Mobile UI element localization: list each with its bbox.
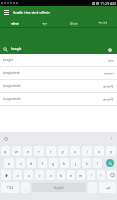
staticText: অভিধান — [11, 22, 19, 25]
button[interactable]: j — [71, 158, 80, 168]
button[interactable]: k — [82, 158, 91, 168]
button[interactable]: bangla — [0, 54, 117, 67]
staticText: bangladesh — [3, 71, 21, 75]
button[interactable]: o — [94, 146, 104, 156]
staticText: b — [60, 173, 63, 177]
button[interactable]: g — [49, 158, 58, 168]
button[interactable]: Keyboard settings — [1, 134, 10, 143]
staticText: o — [98, 149, 100, 153]
button[interactable]: q — [1, 146, 10, 156]
button[interactable]: ইতিহাস — [59, 19, 88, 27]
staticText: x — [28, 173, 30, 177]
button[interactable]: bangladesh — [0, 67, 117, 80]
button[interactable]: ?123 — [1, 182, 19, 193]
staticText: g — [52, 161, 55, 165]
button[interactable]: x — [24, 170, 33, 180]
staticText: e — [27, 149, 29, 153]
staticText: bangla — [3, 58, 13, 62]
staticText: v — [50, 173, 52, 177]
staticText: ইতিহাস — [70, 22, 78, 25]
staticText: পছন্দ — [42, 22, 48, 25]
button[interactable]: c — [35, 170, 44, 180]
staticText: m — [79, 173, 83, 177]
button[interactable]: y — [58, 146, 68, 156]
staticText: bangla — [11, 47, 22, 51]
button[interactable]: h — [60, 158, 69, 168]
button[interactable]: পছন্দ — [30, 19, 59, 27]
staticText: z — [17, 173, 19, 177]
button[interactable]: i — [82, 146, 92, 156]
staticText: English — [54, 186, 64, 190]
button[interactable]: bangladeshi — [0, 80, 117, 93]
staticText: bangladeshi — [3, 84, 21, 88]
staticText: q — [4, 149, 7, 153]
staticText: i — [87, 149, 88, 153]
button[interactable]: Voice input — [107, 134, 116, 143]
button[interactable]: p — [106, 146, 116, 156]
staticText: c — [39, 173, 41, 177]
staticText: বাংলাদেশ — [104, 72, 114, 75]
button[interactable]: e — [23, 146, 32, 156]
other: Search — [3, 47, 8, 52]
button[interactable]: f — [38, 158, 47, 168]
staticText: r — [38, 149, 40, 153]
staticText: ? — [100, 173, 102, 177]
staticText: ইংরেজি থেকে বাংলা অভিধান — [13, 10, 50, 16]
staticText: n — [70, 173, 73, 177]
staticText: bangladeshi — [3, 97, 21, 101]
staticText: বাংলাদেশী — [103, 85, 114, 88]
staticText: বাংলাদেশী — [103, 98, 114, 101]
staticText: p — [110, 149, 113, 153]
button[interactable]: Backspace — [107, 170, 116, 180]
button[interactable]: r — [34, 146, 44, 156]
staticText: f — [42, 161, 44, 165]
staticText: ?123 — [7, 186, 14, 190]
staticText: k — [86, 161, 88, 165]
button[interactable]: m — [77, 170, 85, 180]
button[interactable]: অভিধান — [0, 19, 30, 27]
button[interactable]: s — [16, 158, 25, 168]
button[interactable]: w — [12, 146, 21, 156]
button[interactable]: শব্দ খেলা — [88, 19, 117, 27]
staticText: d — [30, 161, 33, 165]
button[interactable]: Open navigation menu — [0, 6, 13, 19]
button[interactable]: t — [46, 146, 56, 156]
staticText: h — [63, 161, 66, 165]
staticText: y — [62, 149, 64, 153]
button[interactable]: , — [21, 182, 30, 193]
button[interactable]: a — [4, 158, 14, 168]
button[interactable]: ! — [87, 170, 95, 180]
staticText: শব্দ খেলা — [98, 21, 107, 25]
button[interactable]: Enter — [99, 182, 116, 193]
button[interactable]: Clear search — [106, 46, 113, 53]
button[interactable]: ? — [97, 170, 105, 180]
staticText: l — [97, 161, 98, 165]
staticText: 11:29 AM — [100, 1, 116, 6]
button[interactable]: u — [70, 146, 80, 156]
button[interactable]: l — [93, 158, 102, 168]
staticText: বাংলা — [108, 59, 114, 62]
button[interactable]: n — [67, 170, 75, 180]
button[interactable]: z — [13, 170, 22, 180]
button[interactable]: b — [57, 170, 65, 180]
staticText: u — [74, 149, 77, 153]
button[interactable]: v — [46, 170, 55, 180]
staticText: ! — [91, 173, 92, 177]
staticText: a — [8, 161, 10, 165]
button[interactable]: Shift — [1, 170, 11, 180]
staticText: s — [20, 161, 22, 165]
button[interactable]: d — [27, 158, 36, 168]
staticText: w — [15, 149, 18, 153]
staticText: j — [75, 161, 76, 165]
button[interactable]: bangladeshi — [0, 93, 117, 106]
staticText: t — [50, 149, 52, 153]
button[interactable]: English — [32, 183, 86, 192]
button[interactable]: Search — [103, 157, 117, 169]
staticText: . — [92, 186, 93, 190]
